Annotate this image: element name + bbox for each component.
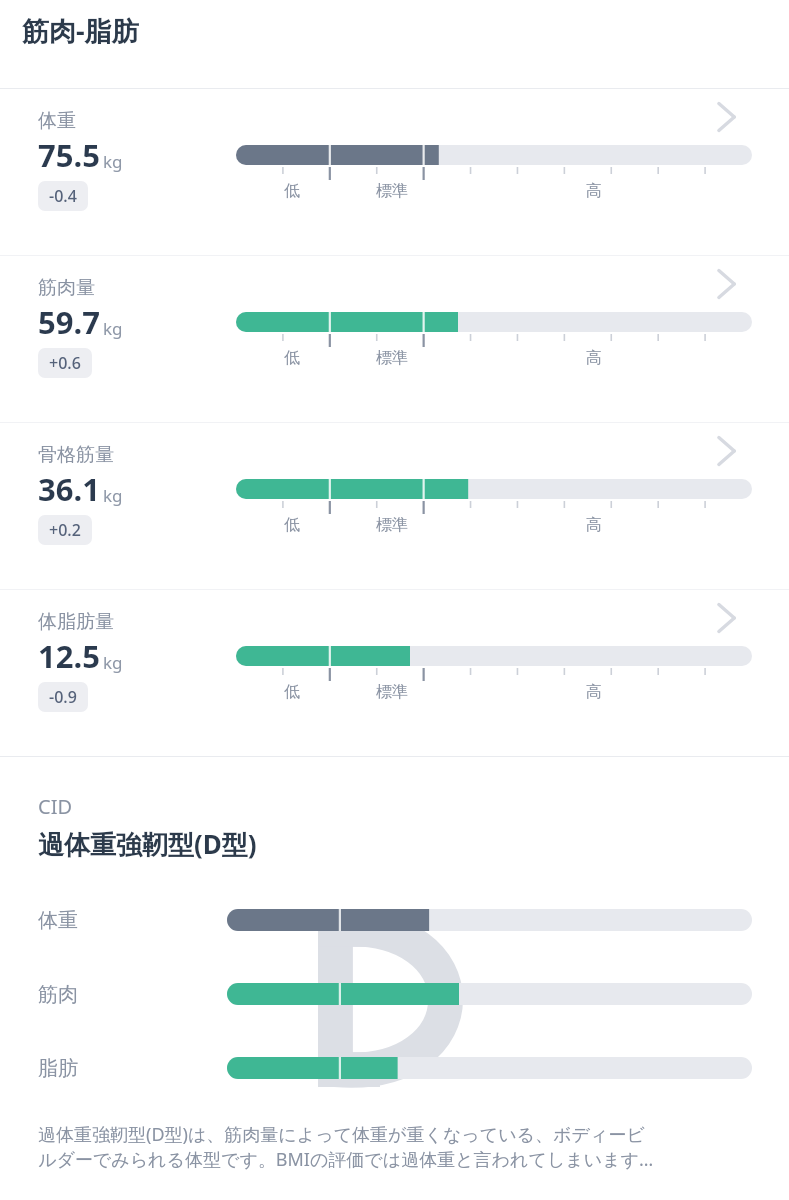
staticText: +0.6 [49,352,81,374]
staticText: +0.2 [49,519,81,541]
staticText: 低 [284,515,300,535]
button[interactable]: 詳細 [706,427,754,475]
staticText: 12.5 [38,635,100,677]
staticText: 標準 [376,348,408,368]
button[interactable]: 筋肉量 [0,256,789,422]
staticText: ルダーでみられる体型です。BMIの評価では過体重と言われてしまいます… [38,1147,654,1172]
staticText: -0.4 [49,185,77,207]
staticText: 筋肉-脂肪 [22,12,139,49]
button[interactable]: 詳細 [706,260,754,308]
staticText: 体脂肪量 [38,610,114,634]
staticText: -0.9 [49,686,77,708]
staticText: 筋肉量 [38,276,95,300]
staticText: 標準 [376,515,408,535]
button[interactable]: 体脂肪量 [0,590,789,756]
staticText: kg [103,317,123,340]
staticText: 脂肪 [38,1056,78,1081]
button[interactable]: 体重 [0,89,789,255]
staticText: 高 [586,181,602,201]
staticText: 高 [586,348,602,368]
staticText: 体重 [38,109,76,133]
button[interactable]: 詳細 [706,93,754,141]
staticText: 高 [586,682,602,702]
staticText: 過体重強靭型(D型)は、筋肉量によって体重が重くなっている、ボディービ [38,1122,645,1147]
staticText: 59.7 [38,301,100,343]
staticText: 36.1 [38,468,100,510]
staticText: 体重 [38,908,78,933]
staticText: 骨格筋量 [38,443,114,467]
button[interactable]: 骨格筋量 [0,423,789,589]
staticText: 低 [284,181,300,201]
staticText: 標準 [376,181,408,201]
staticText: CID [38,793,73,820]
staticText: 高 [586,515,602,535]
staticText: 低 [284,682,300,702]
staticText: kg [103,150,123,173]
staticText: 過体重強靭型(D型) [38,826,257,862]
button[interactable]: 詳細 [706,594,754,642]
staticText: kg [103,651,123,674]
staticText: 低 [284,348,300,368]
staticText: 75.5 [38,134,100,176]
staticText: 標準 [376,682,408,702]
staticText: kg [103,484,123,507]
staticText: 筋肉 [38,982,78,1007]
